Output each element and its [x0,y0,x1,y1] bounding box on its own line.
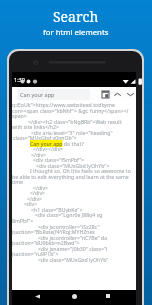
button[interactable]: Home [68,290,80,302]
staticText: be able to edit everything and learn at … [12,173,129,180]
button[interactable]: Previous match [111,88,123,100]
staticText: </div> [27,195,43,202]
button[interactable]: Back [31,290,43,302]
staticText: 8mPbf"> [12,217,34,224]
staticText: <div aria-level="3" role="heading" [31,129,113,136]
button[interactable]: Open in browser [99,88,111,100]
staticText: class="MUxGbd v0nnOb"> [13,134,77,141]
button[interactable]: Next match [124,88,136,100]
button[interactable]: Recent apps [102,290,114,302]
staticText: jsaction="ru9P1b"> [12,250,59,257]
staticText: <div class="MUxGbd lyOhYb" [38,256,109,263]
staticText: Search [53,7,99,26]
staticText: 1:39 [14,76,25,83]
staticText: <div jscontroller="nC7Be" da [38,234,108,241]
staticText: time [12,178,23,185]
staticText: Can your app do that? [30,140,84,147]
staticText: </div> [33,184,49,191]
staticText: jsaction="dU0bkb=n2Bwd"> [12,239,80,246]
staticText: span> [12,112,27,119]
staticText: <div jscontroller="iSz2Rc" [38,223,100,230]
staticText: </div></div> [33,145,64,152]
button[interactable]: Can your app [17,89,90,100]
staticText: <div class="MUxGbd lyOhYb"> [36,162,110,169]
staticText: <div jsname="J0b30" class="l [38,245,108,252]
staticText: for html elements [43,27,109,38]
staticText: </div> [30,189,46,196]
staticText: jsaction="BbRate(f4YRqJ;MYHZnex [12,228,96,235]
staticText: con><span class="kbNhf"> &gt; funny</spa… [12,107,129,114]
staticText: q:iEoUk">https://www.websiteed.todbyme [12,101,115,108]
staticText: with site links</h2> [12,123,59,130]
staticText: </div><h2 class="bNgBRb">Web result [28,118,122,125]
staticText: <h1 class="BUybKe"> [31,206,83,213]
staticText: I thought so. Oh this feels so awesome t… [30,167,131,174]
staticText: </div> [31,151,47,158]
staticText: <div> [24,200,38,207]
staticText: <div class="Lgnr0e J88q4 vg [35,211,103,218]
staticText: <div class="fSmPbf"> [33,156,85,163]
staticText: Can your app [20,91,55,98]
